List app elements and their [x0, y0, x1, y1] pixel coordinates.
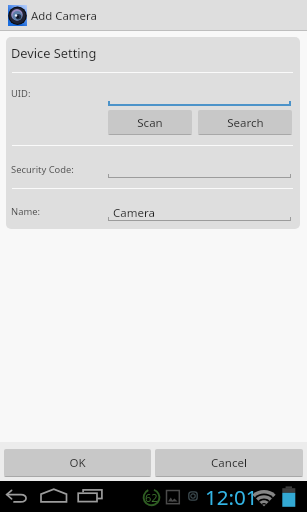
- staticText: Security Code:: [11, 163, 74, 176]
- button[interactable]: Cancel: [155, 449, 303, 477]
- staticText: Search: [227, 115, 264, 131]
- button[interactable]: OK: [4, 449, 151, 477]
- button[interactable]: Home: [38, 485, 70, 509]
- button[interactable]: Search: [198, 110, 292, 135]
- staticText: 62: [145, 490, 158, 505]
- staticText: Camera: [113, 205, 155, 221]
- staticText: Name:: [11, 205, 40, 218]
- staticText: 12:01: [205, 483, 258, 511]
- staticText: OK: [69, 455, 86, 471]
- button[interactable]: Scan: [108, 110, 192, 135]
- staticText: UID:: [11, 87, 31, 100]
- staticText: Device Setting: [11, 44, 97, 61]
- staticText: Add Camera: [31, 8, 97, 24]
- staticText: Cancel: [211, 455, 247, 471]
- button[interactable]: Back: [2, 485, 32, 509]
- staticText: Scan: [137, 115, 163, 131]
- button[interactable]: Recents: [76, 485, 106, 509]
